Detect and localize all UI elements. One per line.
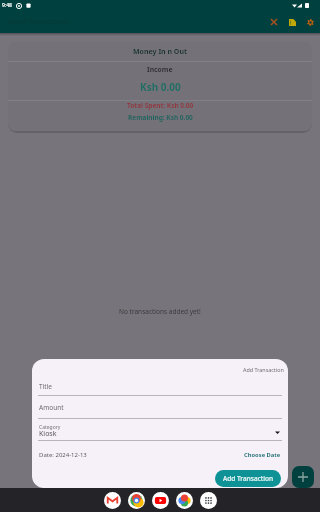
button[interactable]: Title (32, 377, 288, 396)
button[interactable]: Clear search (265, 13, 283, 31)
button[interactable]: Choose Date (244, 451, 281, 459)
button[interactable]: Add transaction (292, 466, 314, 488)
button[interactable]: YouTube (152, 492, 169, 509)
staticText: Amount (39, 403, 64, 412)
staticText: Choose Date (244, 451, 281, 459)
staticText: Add Transaction (243, 366, 284, 373)
staticText: Kiosk (39, 429, 57, 439)
button[interactable]: Category (32, 419, 288, 441)
staticText: Title (39, 382, 52, 391)
staticText: No transactions added yet! (119, 307, 201, 316)
button[interactable]: Settings (301, 13, 319, 31)
staticText: Ksh 0.00 (140, 80, 181, 94)
button[interactable]: Reports (283, 13, 301, 31)
button[interactable]: All apps (200, 492, 217, 509)
staticText: Remaining: Ksh 0.00 (128, 113, 193, 122)
button[interactable]: Add Transaction (215, 470, 281, 487)
button[interactable]: Amount (32, 396, 288, 419)
staticText: Income (147, 65, 173, 74)
staticText: Add Transaction (223, 474, 274, 483)
button[interactable]: Gmail (104, 492, 121, 509)
button[interactable]: Photos (176, 492, 193, 509)
button[interactable]: Chrome (128, 492, 145, 509)
staticText: Money In n Out (133, 47, 187, 57)
staticText: Total Spent: Ksh 0.00 (127, 101, 194, 110)
staticText: Date: 2024-12-13 (39, 451, 87, 459)
staticText: 9:48 (2, 2, 12, 9)
staticText: Category (39, 424, 61, 431)
